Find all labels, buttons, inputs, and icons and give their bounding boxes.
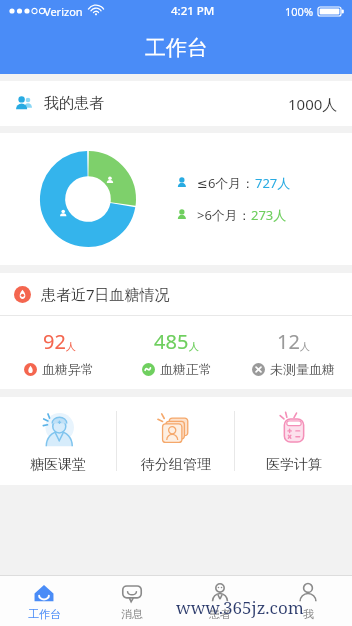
button[interactable]: 患者 <box>176 576 264 626</box>
staticText: 485 <box>154 328 189 355</box>
button[interactable]: 485 <box>118 316 235 389</box>
button[interactable]: 我的患者 <box>0 81 352 126</box>
staticText: 糖医课堂 <box>30 456 86 474</box>
button[interactable]: 糖医课堂 <box>0 397 116 485</box>
staticText: 人 <box>66 340 76 353</box>
staticText: 未测量血糖 <box>270 361 335 377</box>
staticText: ≤6个月： <box>197 174 255 192</box>
staticText: 血糖正常 <box>160 361 212 377</box>
button[interactable]: 待分组管理 <box>117 397 234 485</box>
staticText: 100% <box>285 4 314 19</box>
staticText: 医学计算 <box>266 456 322 474</box>
staticText: 工作台 <box>28 607 61 621</box>
staticText: Verizon <box>44 4 83 19</box>
staticText: >6个月： <box>197 206 251 224</box>
button[interactable]: 消息 <box>88 576 176 626</box>
staticText: 727人 <box>255 174 291 192</box>
button[interactable]: 工作台 <box>0 576 88 626</box>
staticText: 4:21 PM <box>171 3 215 19</box>
staticText: 血糖异常 <box>42 361 94 377</box>
staticText: 消息 <box>121 607 143 621</box>
staticText: 12 <box>277 328 300 355</box>
staticText: 273人 <box>251 206 287 224</box>
button[interactable]: 92 <box>0 316 118 389</box>
staticText: 待分组管理 <box>141 456 211 474</box>
staticText: 92 <box>43 328 66 355</box>
staticText: www.365jz.com <box>176 596 304 619</box>
staticText: 患者 <box>209 607 231 621</box>
staticText: 人 <box>189 340 199 353</box>
staticText: 我的患者 <box>44 94 104 113</box>
button[interactable]: 医学计算 <box>235 397 352 485</box>
button[interactable]: 我 <box>264 576 352 626</box>
staticText: 我 <box>303 607 314 621</box>
staticText: 1000人 <box>288 94 338 114</box>
button[interactable]: 12 <box>235 316 352 389</box>
staticText: 患者近7日血糖情况 <box>41 284 170 304</box>
staticText: 工作台 <box>145 35 208 61</box>
staticText: 人 <box>300 340 310 353</box>
